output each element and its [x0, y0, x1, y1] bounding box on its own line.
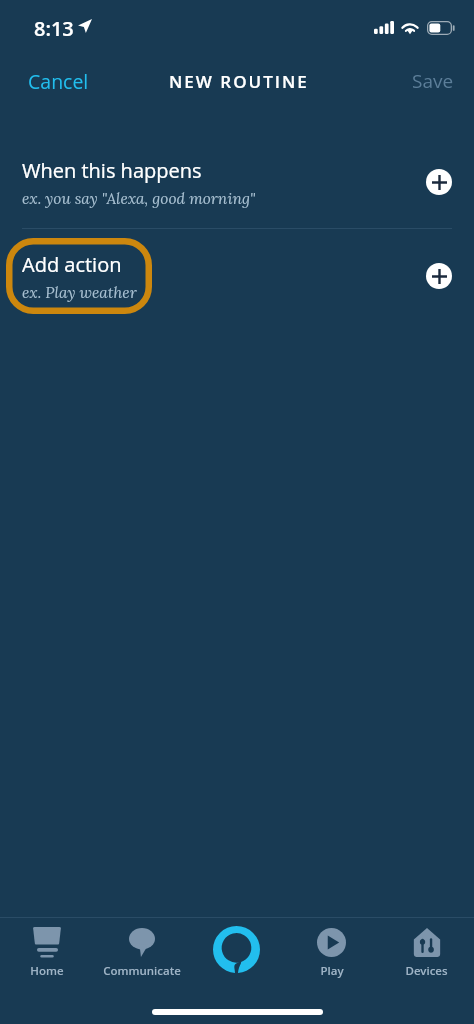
other: Location: [78, 19, 92, 33]
button[interactable]: Alexa: [189, 918, 284, 992]
staticText: ex. you say "Alexa, good morning": [22, 188, 256, 208]
staticText: Add action: [22, 251, 122, 278]
staticText: Save: [412, 68, 454, 94]
button[interactable]: Communicate: [94, 918, 189, 992]
staticText: NEW ROUTINE: [169, 70, 309, 93]
other: Add: [426, 169, 452, 195]
button[interactable]: Add action: [0, 229, 474, 323]
staticText: 8:13: [34, 15, 74, 42]
staticText: Home: [30, 963, 64, 979]
staticText: Play: [320, 963, 344, 979]
button[interactable]: Home: [0, 918, 94, 992]
other: Add: [426, 263, 452, 289]
button[interactable]: Save: [396, 59, 474, 103]
button[interactable]: When this happens: [0, 135, 474, 229]
staticText: Cancel: [28, 68, 89, 94]
staticText: Devices: [405, 963, 448, 979]
staticText: Communicate: [103, 963, 181, 979]
staticText: When this happens: [22, 157, 202, 184]
button[interactable]: Play: [284, 918, 379, 992]
button[interactable]: Cancel: [0, 59, 105, 103]
staticText: ex. Play weather: [22, 282, 137, 302]
button[interactable]: Devices: [379, 918, 474, 992]
